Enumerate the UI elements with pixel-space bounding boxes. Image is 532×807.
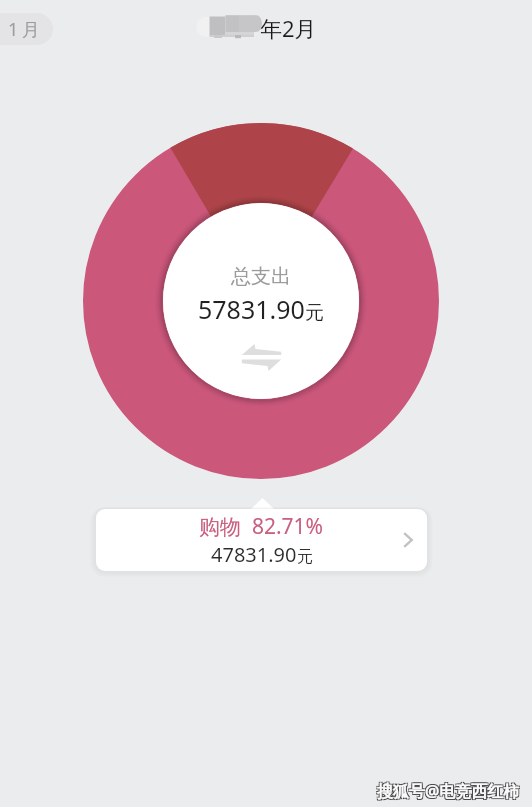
staticText: 元 [297, 547, 313, 567]
staticText: 元 [305, 301, 324, 325]
staticText: 搜狐号@电竞西红柿 [376, 779, 519, 801]
staticText: 搜狐号@电竞西红柿 [378, 781, 521, 803]
button[interactable]: Switch view [242, 344, 281, 371]
staticText: 1月 [8, 17, 44, 42]
button[interactable]: 购物 82.71% [96, 509, 427, 571]
staticText: 购物 82.71% [199, 512, 324, 541]
staticText: 57831.90 [198, 292, 305, 326]
staticText: 总支出 [231, 264, 291, 289]
staticText: 搜狐号@电竞西红柿 [377, 780, 520, 802]
staticText: 搜狐号@电竞西红柿 [378, 779, 521, 801]
staticText: 年2月 [260, 13, 317, 43]
staticText: 47831.90 [211, 541, 297, 568]
staticText: 搜狐号@电竞西红柿 [376, 781, 519, 803]
button[interactable]: 1月 [0, 13, 53, 45]
